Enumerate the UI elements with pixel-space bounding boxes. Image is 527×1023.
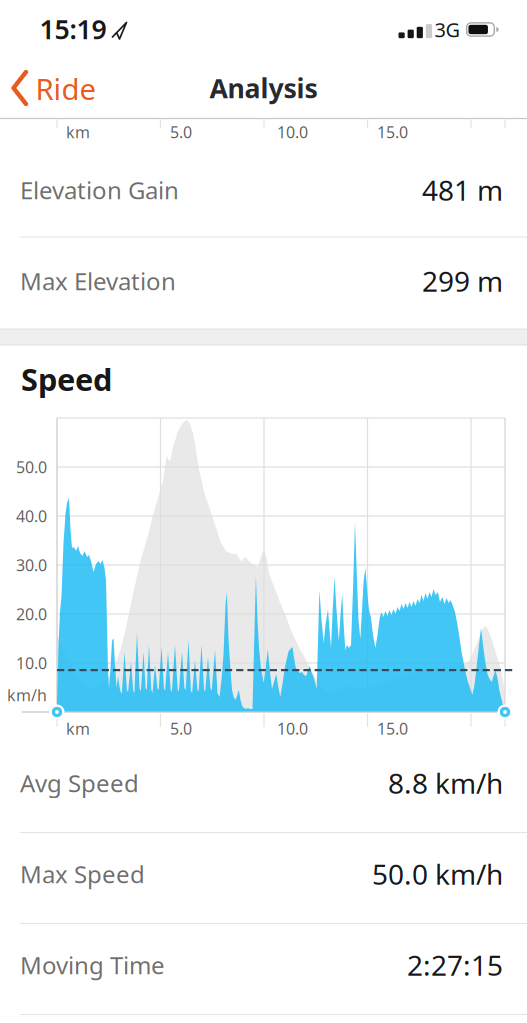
staticText: Ride (35, 69, 96, 108)
staticText: 15:19 (39, 11, 106, 47)
staticText: 2:27:15 (407, 946, 503, 984)
staticText: 10.0 (16, 652, 47, 674)
button[interactable] (497, 704, 513, 720)
staticText: km (66, 718, 90, 739)
staticText: Analysis (209, 70, 317, 106)
staticText: km (66, 121, 90, 143)
staticText: 10.0 (277, 718, 308, 739)
staticText: 15.0 (377, 121, 408, 143)
staticText: 20.0 (16, 603, 47, 625)
staticText: 15.0 (377, 718, 408, 739)
staticText: km/h (7, 684, 47, 706)
button[interactable] (49, 704, 65, 720)
staticText: 10.0 (277, 121, 308, 143)
staticText: Elevation Gain (20, 174, 179, 206)
staticText: 5.0 (170, 718, 192, 739)
staticText: 481 m (422, 171, 503, 209)
staticText: 50.0 km/h (372, 855, 503, 893)
staticText: 40.0 (16, 505, 47, 527)
staticText: 50.0 (16, 456, 47, 478)
staticText: 8.8 km/h (388, 764, 503, 802)
staticText: 3G (434, 16, 460, 43)
staticText: Avg Speed (20, 767, 139, 799)
staticText: Max Speed (20, 858, 145, 890)
staticText: Speed (21, 359, 112, 399)
staticText: Max Elevation (20, 265, 176, 297)
staticText: 5.0 (170, 121, 192, 143)
button[interactable]: Ride (0, 60, 100, 116)
staticText: 299 m (422, 262, 503, 300)
staticText: 30.0 (16, 554, 47, 576)
staticText: Moving Time (20, 949, 165, 981)
